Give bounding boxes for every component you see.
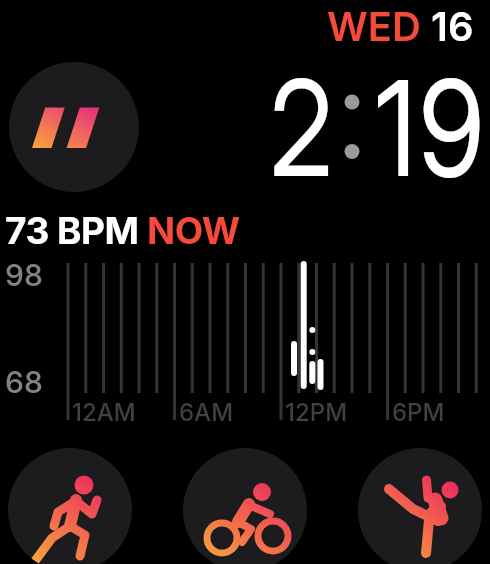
staticText: 16 [421, 2, 474, 50]
staticText: NOW [147, 208, 240, 253]
button[interactable] [9, 62, 139, 192]
staticText: 6AM [179, 398, 234, 427]
staticText: 12PM [285, 398, 348, 427]
staticText: 6PM [392, 398, 445, 427]
staticText: 2 [270, 48, 333, 208]
staticText: 1 [376, 48, 416, 208]
staticText: 73 BPM [5, 208, 147, 253]
staticText: 9 [419, 48, 485, 208]
staticText: 12AM [72, 398, 136, 427]
staticText: WED [327, 2, 421, 50]
staticText: 68 [5, 364, 43, 400]
staticText: 98 [5, 257, 43, 293]
button[interactable] [183, 448, 307, 564]
button[interactable] [8, 448, 132, 564]
button[interactable] [358, 448, 482, 564]
